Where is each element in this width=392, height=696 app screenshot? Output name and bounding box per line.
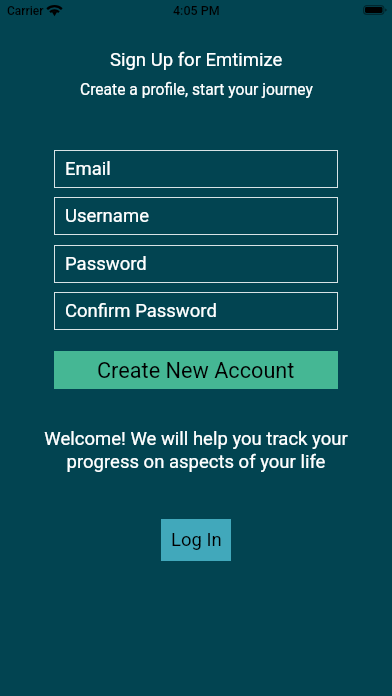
button[interactable]: Password [54,245,338,283]
other: Battery full [363,5,387,15]
staticText: 4:05 PM [173,3,220,18]
button[interactable]: Email [54,150,338,188]
staticText: Welcome! We will help you track your pro… [40,428,352,473]
staticText: Create a profile, start your journey [80,81,313,99]
button[interactable]: Create New Account [54,351,338,389]
staticText: Sign Up for Emtimize [110,49,283,71]
button[interactable]: Confirm Password [54,292,338,330]
button[interactable]: Username [54,197,338,235]
staticText: Email [65,158,111,180]
staticText: Carrier [7,4,44,18]
other: Wi-Fi signal [47,4,62,16]
staticText: Log In [171,529,222,551]
staticText: Create New Account [97,358,295,383]
staticText: Confirm Password [65,300,217,322]
button[interactable]: Log In [161,519,231,561]
staticText: Username [65,205,149,227]
staticText: Password [65,253,147,275]
